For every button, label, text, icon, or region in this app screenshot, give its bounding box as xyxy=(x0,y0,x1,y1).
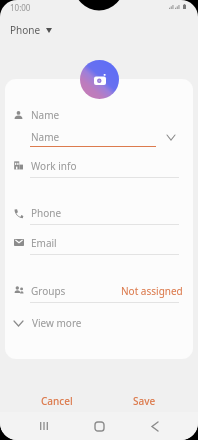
staticText: Name xyxy=(31,130,60,144)
staticText: Phone xyxy=(10,23,41,37)
staticText: Groups xyxy=(31,284,66,298)
button[interactable] xyxy=(5,104,193,148)
button[interactable]: Expand name fields xyxy=(164,130,178,144)
button[interactable] xyxy=(5,232,193,254)
button[interactable]: Phone xyxy=(5,20,57,40)
button[interactable]: Save xyxy=(128,392,160,410)
button[interactable]: Back xyxy=(147,412,163,440)
staticText: Cancel xyxy=(41,394,73,408)
staticText: Save xyxy=(133,394,156,408)
staticText: Phone xyxy=(31,206,62,220)
button[interactable]: Cancel xyxy=(36,392,78,410)
staticText: View more xyxy=(32,316,82,330)
staticText: Not assigned xyxy=(121,284,183,298)
staticText: Email xyxy=(31,236,57,250)
button[interactable] xyxy=(5,281,193,302)
button[interactable]: View more xyxy=(5,312,193,334)
button[interactable]: Add contact photo xyxy=(80,60,119,99)
button[interactable]: Home xyxy=(91,412,107,440)
staticText: 10:00 xyxy=(10,2,31,13)
staticText: Work info xyxy=(31,159,77,173)
button[interactable] xyxy=(5,155,193,177)
button[interactable] xyxy=(5,203,193,225)
staticText: Name xyxy=(31,108,60,122)
button[interactable]: Recents xyxy=(36,412,52,440)
